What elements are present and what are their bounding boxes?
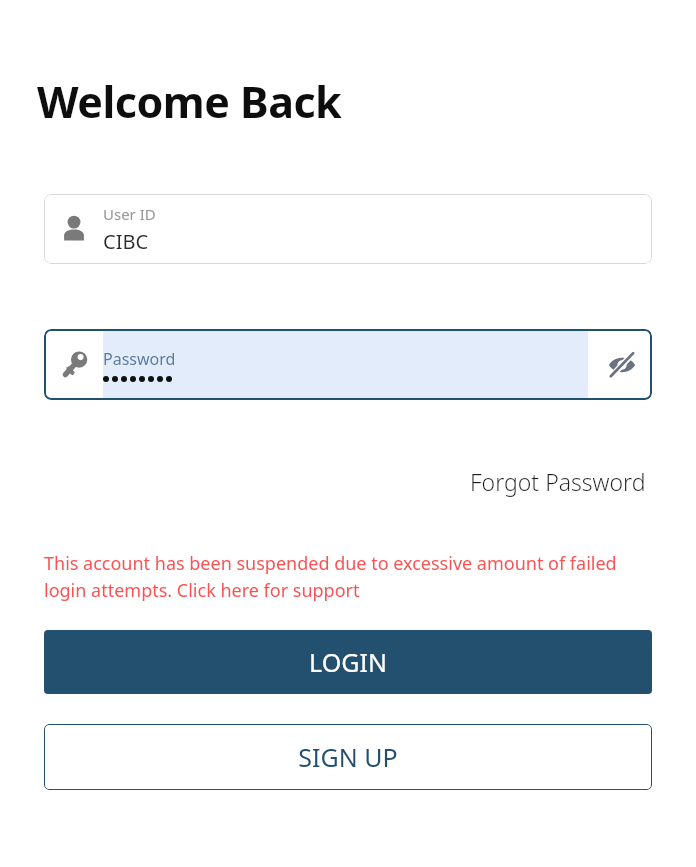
staticText: Welcome Back	[37, 72, 342, 131]
button[interactable]: This account has been suspended due to e…	[44, 551, 652, 602]
button[interactable]: Forgot Password	[466, 462, 650, 501]
button[interactable]: SIGN UP	[44, 724, 652, 790]
staticText: Password	[103, 348, 176, 370]
button[interactable]: LOGIN	[44, 630, 652, 694]
staticText: User ID	[103, 204, 156, 224]
button[interactable]: User ID	[44, 194, 652, 264]
staticText: CIBC	[103, 228, 149, 255]
staticText: SIGN UP	[298, 740, 398, 774]
staticText: LOGIN	[309, 645, 387, 679]
button[interactable]: Show password	[592, 329, 652, 400]
